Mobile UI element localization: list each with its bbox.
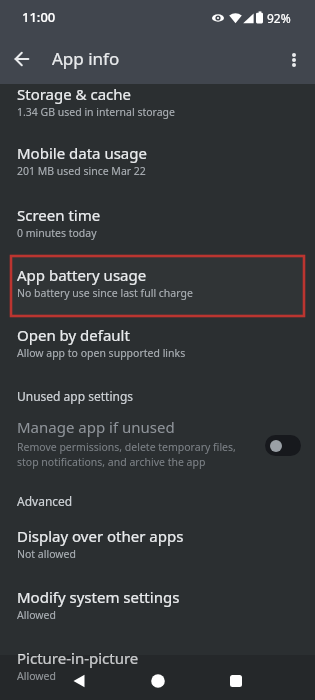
staticText: 0 minutes today — [17, 226, 97, 240]
staticText: Storage & cache — [17, 84, 132, 104]
button[interactable]: Screen time — [0, 205, 315, 240]
staticText: Mobile data usage — [17, 143, 147, 163]
button[interactable]: Mobile data usage — [0, 143, 315, 178]
staticText: Picture-in-picture — [17, 648, 139, 668]
staticText: Unused app settings — [17, 388, 134, 404]
button[interactable]: Display over other apps — [0, 526, 315, 561]
staticText: App info — [52, 47, 120, 70]
button[interactable] — [60, 662, 98, 700]
staticText: Display over other apps — [17, 526, 184, 546]
staticText: Open by default — [17, 325, 130, 345]
button[interactable]: Picture-in-picture — [0, 648, 315, 683]
staticText: Modify system settings — [17, 587, 180, 607]
staticText: Manage app if unused — [17, 417, 175, 437]
staticText: 92% — [267, 10, 291, 26]
staticText: Allowed — [17, 608, 56, 622]
button[interactable] — [265, 435, 301, 456]
staticText: stop notifications, and archive the app — [17, 455, 206, 469]
staticText: Allow app to open supported links — [17, 346, 186, 360]
staticText: 11:00 — [22, 8, 56, 26]
button[interactable]: Open by default — [0, 325, 315, 360]
button[interactable]: Manage app if unused — [0, 417, 315, 469]
staticText: 201 MB used since Mar 22 — [17, 164, 146, 178]
staticText: 1.34 GB used in internal storage — [17, 105, 175, 119]
staticText: Remove permissions, delete temporary fil… — [17, 440, 236, 454]
staticText: No battery use since last full charge — [17, 286, 193, 300]
staticText: App battery usage — [17, 265, 147, 285]
button[interactable] — [139, 662, 177, 700]
button[interactable]: Storage & cache — [0, 84, 315, 119]
staticText: Allowed — [17, 669, 56, 683]
button[interactable] — [217, 662, 255, 700]
button[interactable]: Modify system settings — [0, 587, 315, 622]
staticText: Screen time — [17, 205, 101, 225]
staticText: Not allowed — [17, 547, 76, 561]
button[interactable] — [277, 43, 311, 77]
button[interactable] — [4, 41, 40, 77]
staticText: Advanced — [17, 493, 73, 509]
button[interactable]: App battery usage — [0, 265, 315, 300]
